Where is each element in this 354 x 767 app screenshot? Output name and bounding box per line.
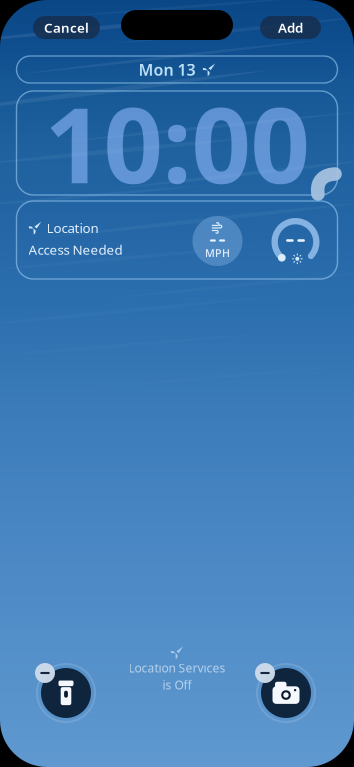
staticText: Mon 13 (138, 59, 195, 80)
staticText: Add (278, 19, 303, 36)
button[interactable]: Cancel (33, 16, 100, 39)
button[interactable]: Add (260, 16, 321, 39)
button[interactable]: Mon 13 (16, 56, 337, 83)
staticText: Location (46, 219, 98, 237)
button[interactable]: 10:00 (16, 91, 337, 195)
staticText: 10:00 (44, 74, 309, 212)
button[interactable]: Camera (254, 661, 318, 725)
staticText: Location Services (128, 660, 225, 676)
button[interactable]: Flashlight (34, 661, 98, 725)
staticText: Cancel (44, 19, 89, 36)
staticText: is Off (162, 677, 191, 693)
button[interactable]: Location (16, 201, 337, 279)
staticText: MPH (205, 246, 230, 260)
staticText: Access Needed (28, 241, 122, 258)
